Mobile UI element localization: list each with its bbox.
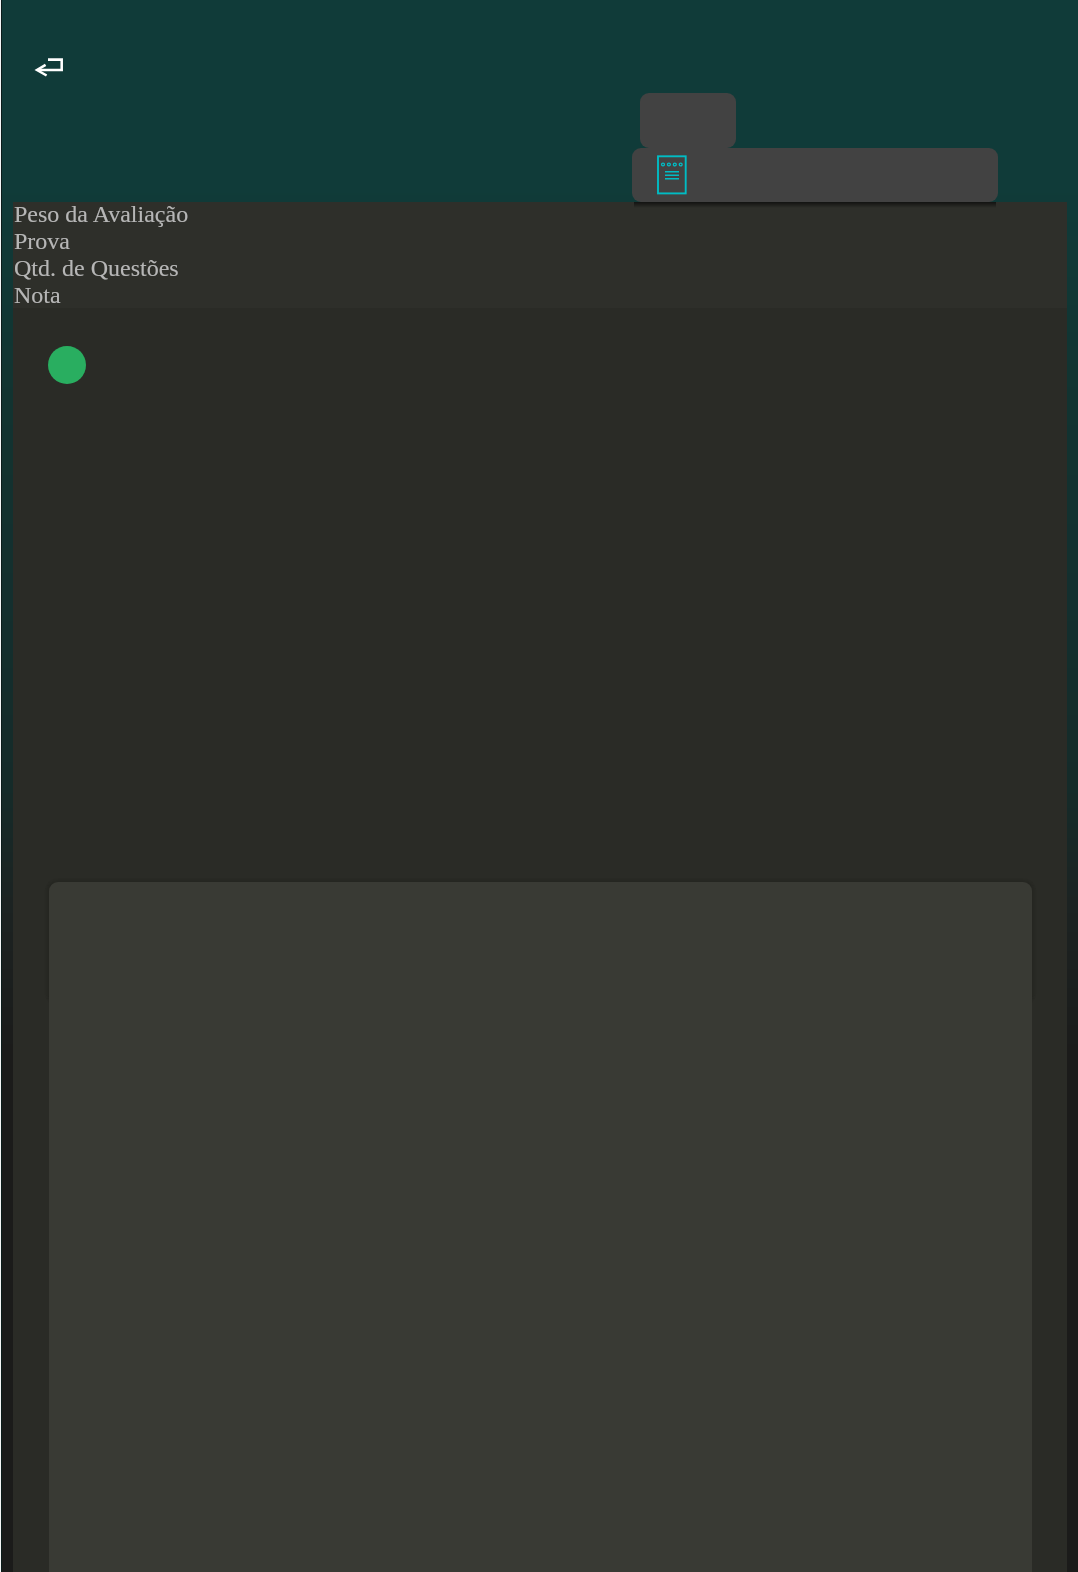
button[interactable]: Notes	[632, 148, 998, 202]
button[interactable]: Back	[20, 44, 80, 90]
button[interactable]: Status	[48, 346, 86, 384]
staticText: Peso da Avaliação Prova Qtd. de Questões…	[14, 201, 189, 307]
button[interactable]	[640, 93, 736, 148]
